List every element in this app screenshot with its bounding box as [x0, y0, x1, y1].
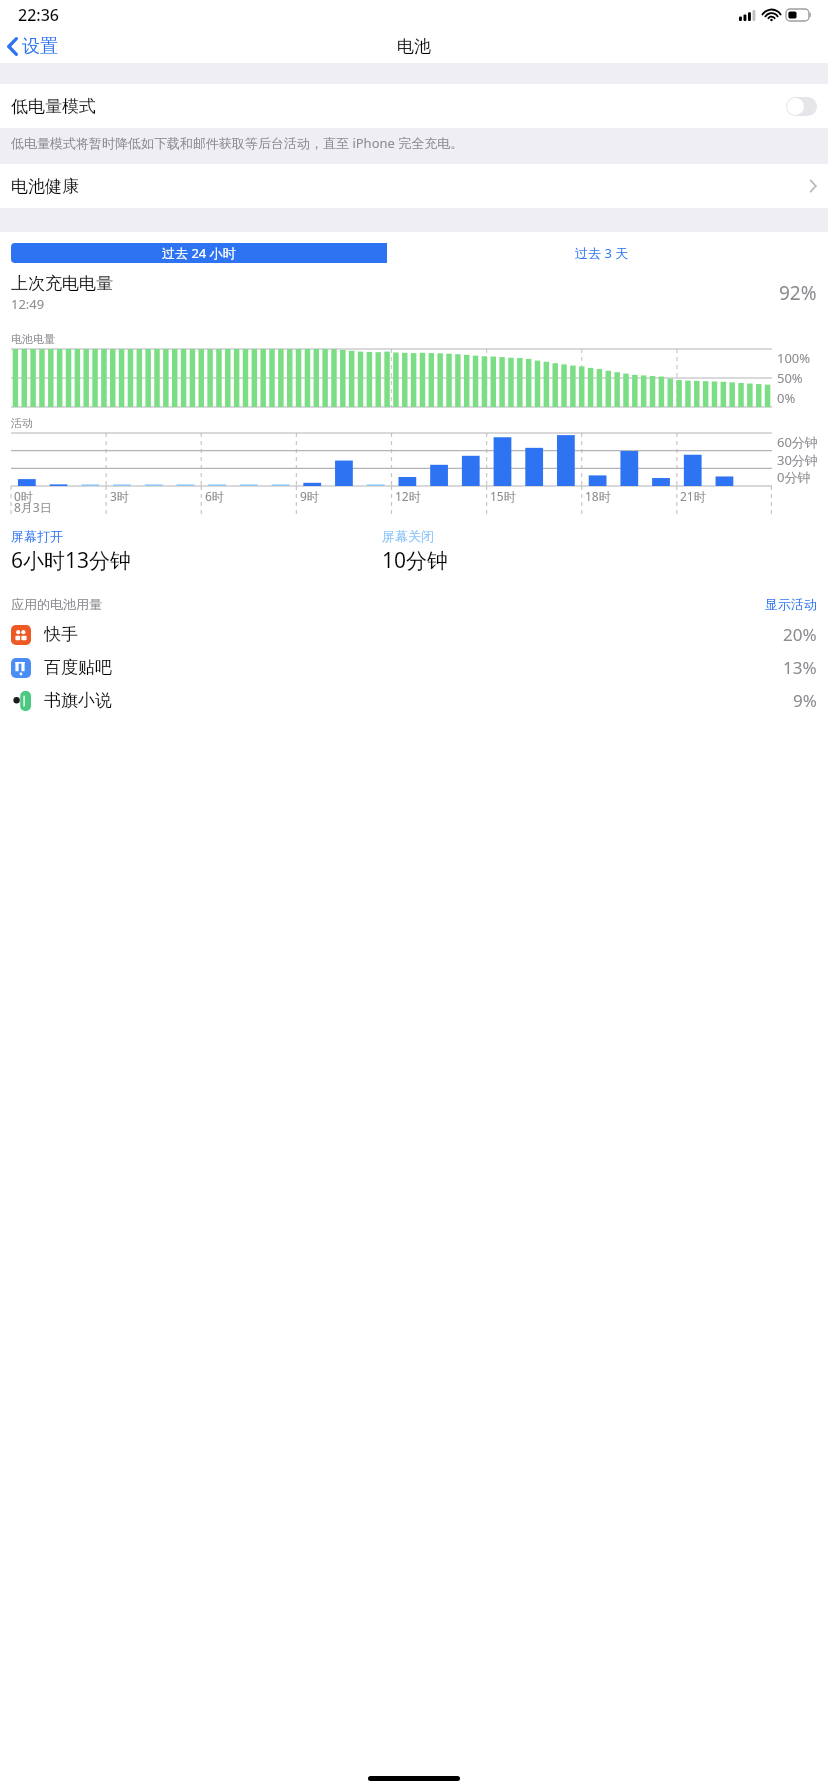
staticText: 0时	[14, 488, 33, 504]
staticText: 显示活动	[765, 596, 817, 612]
staticText: 18时	[585, 488, 611, 504]
staticText: 电池电量	[11, 332, 55, 346]
staticText: 屏幕关闭	[382, 528, 434, 544]
staticText: 快手	[44, 624, 78, 645]
button[interactable]: 低电量模式	[0, 84, 828, 128]
staticText: 60分钟	[777, 433, 818, 451]
button[interactable]: 低电量模式开关	[786, 97, 817, 116]
staticText: 低电量模式	[11, 96, 96, 117]
staticText: 活动	[11, 416, 33, 430]
staticText: 10分钟	[382, 546, 449, 575]
staticText: 12时	[395, 488, 421, 504]
staticText: 过去 3 天	[575, 244, 629, 262]
button[interactable]: 百度贴吧	[0, 651, 828, 684]
staticText: 3时	[110, 488, 129, 504]
staticText: 20%	[783, 623, 817, 646]
staticText: 应用的电池用量	[11, 596, 102, 612]
button[interactable]: 过去 3 天	[387, 243, 817, 263]
button[interactable]: 显示活动	[765, 596, 817, 612]
staticText: 低电量模式将暂时降低如下载和邮件获取等后台活动，直至 iPhone 完全充电。	[11, 134, 464, 152]
staticText: 92%	[779, 280, 817, 306]
button[interactable]: 电池健康	[0, 164, 828, 208]
staticText: 21时	[680, 488, 706, 504]
staticText: 22:36	[18, 4, 59, 26]
staticText: 电池健康	[11, 176, 79, 197]
staticText: 50%	[777, 369, 803, 387]
staticText: 0分钟	[777, 468, 811, 486]
button[interactable]: 设置	[0, 30, 66, 63]
staticText: 6小时13分钟	[11, 546, 132, 575]
staticText: 13%	[783, 656, 817, 679]
staticText: 设置	[22, 35, 58, 58]
staticText: 30分钟	[777, 451, 818, 469]
staticText: 6时	[205, 488, 224, 504]
staticText: 100%	[777, 349, 811, 367]
staticText: 百度贴吧	[44, 657, 112, 678]
staticText: 过去 24 小时	[162, 244, 236, 262]
button[interactable]: 书旗小说	[0, 684, 828, 717]
staticText: 12:49	[11, 295, 45, 313]
staticText: 电池	[397, 36, 431, 57]
staticText: 9%	[793, 689, 817, 712]
staticText: 15时	[490, 488, 516, 504]
staticText: 9时	[300, 488, 319, 504]
button[interactable]: 快手	[0, 618, 828, 651]
staticText: 0%	[777, 389, 796, 407]
staticText: 8月3日	[14, 499, 52, 515]
button[interactable]: 过去 24 小时	[11, 243, 387, 263]
staticText: 上次充电电量	[11, 273, 113, 294]
staticText: 屏幕打开	[11, 528, 63, 544]
staticText: 书旗小说	[44, 690, 112, 711]
